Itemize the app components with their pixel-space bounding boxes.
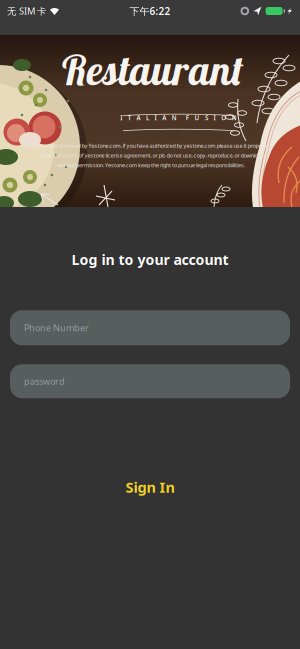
- staticText: N: [172, 114, 177, 122]
- button[interactable]: Sign In: [125, 477, 174, 497]
- staticText: Log in to your account: [71, 250, 228, 269]
- button[interactable]: Phone Number: [10, 310, 290, 345]
- staticText: 下午6:22: [129, 4, 170, 18]
- staticText: F: [186, 114, 189, 122]
- staticText: I: [155, 114, 157, 122]
- staticText: N: [232, 114, 237, 122]
- staticText: Sign In: [125, 477, 174, 497]
- staticText: I: [120, 114, 122, 122]
- staticText: S: [205, 114, 208, 122]
- staticText: O: [221, 114, 226, 122]
- staticText: T: [128, 114, 131, 122]
- button[interactable]: password: [10, 364, 290, 398]
- staticText: 无 SIM 卡: [7, 5, 46, 17]
- staticText: under the terms of yestone license agree…: [38, 152, 263, 159]
- staticText: Restaurant: [62, 44, 243, 96]
- staticText: U: [194, 114, 199, 122]
- staticText: I: [214, 114, 216, 122]
- staticText: A: [162, 114, 166, 122]
- staticText: password: [24, 375, 65, 387]
- staticText: L: [146, 114, 149, 122]
- staticText: Copyright reserved by Yestone.com, if yo…: [34, 142, 267, 149]
- staticText: A: [136, 114, 140, 122]
- staticText: without permission. Yestone.com keep the…: [57, 161, 245, 169]
- staticText: Phone Number: [24, 322, 89, 334]
